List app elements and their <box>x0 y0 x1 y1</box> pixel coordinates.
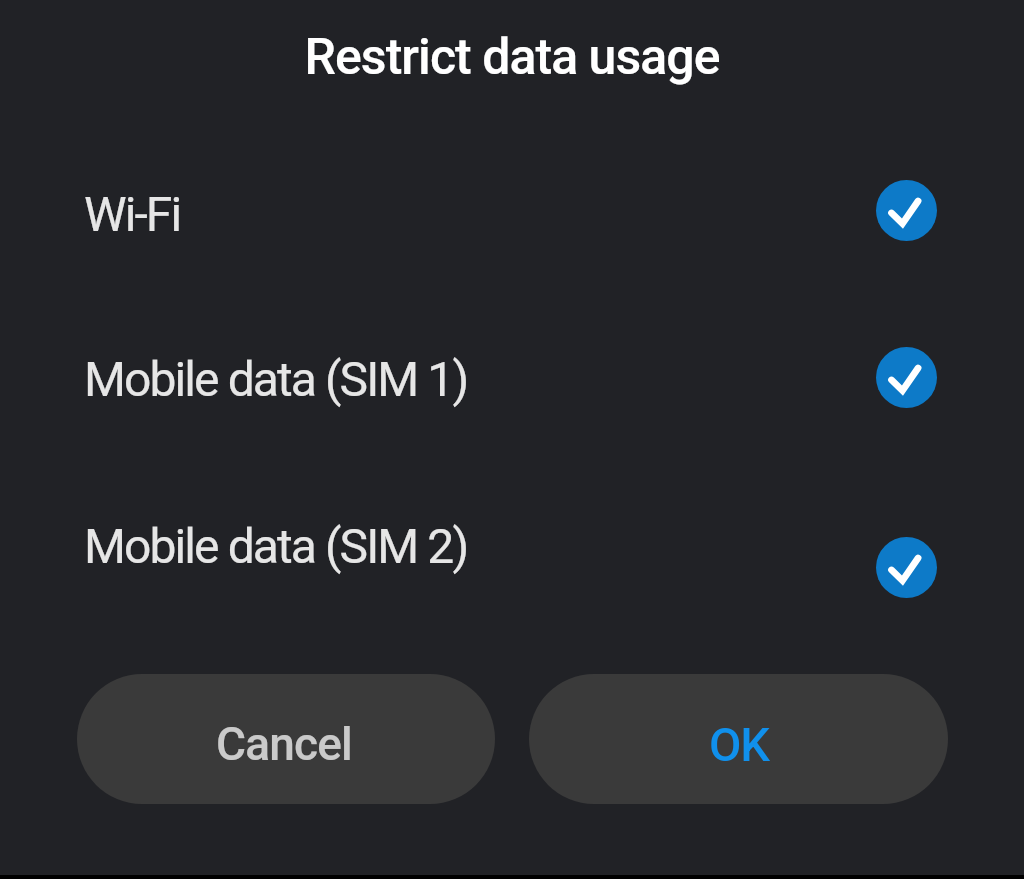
button[interactable]: Cancel <box>77 674 495 804</box>
staticText: Mobile data (SIM 2) <box>84 518 468 574</box>
button[interactable]: Wi-Fi <box>0 150 1024 280</box>
staticText: Wi-Fi <box>84 186 181 242</box>
staticText: Mobile data (SIM 1) <box>84 351 468 407</box>
button[interactable]: Wi-Fi <box>876 180 937 241</box>
button[interactable]: OK <box>529 674 948 804</box>
button[interactable]: Mobile data (SIM 2) <box>876 537 937 598</box>
staticText: Restrict data usage <box>0 28 1024 87</box>
staticText: Cancel <box>216 717 353 771</box>
button[interactable]: Mobile data (SIM 2) <box>0 480 1024 630</box>
button[interactable]: Mobile data (SIM 1) <box>876 347 937 408</box>
staticText: OK <box>709 717 769 772</box>
button[interactable]: Mobile data (SIM 1) <box>0 310 1024 445</box>
